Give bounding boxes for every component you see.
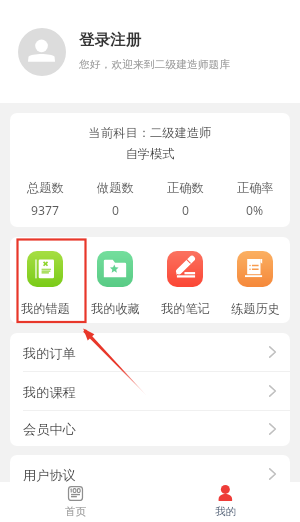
button[interactable]: 我的课程: [10, 372, 290, 410]
staticText: 我的: [215, 505, 236, 518]
staticText: 正确率: [237, 180, 274, 195]
staticText: 我的课程: [23, 384, 76, 401]
staticText: 您好，欢迎来到二级建造师题库: [79, 58, 231, 72]
button[interactable]: 我的: [150, 482, 300, 522]
staticText: 总题数: [27, 180, 64, 195]
staticText: 当前科目：二级建造师: [10, 125, 290, 140]
staticText: 0: [182, 202, 189, 219]
other: 首页: [68, 486, 83, 501]
staticText: 首页: [65, 505, 86, 518]
staticText: 练题历史: [231, 301, 280, 316]
button[interactable]: 我的收藏: [80, 237, 150, 316]
button[interactable]: 练题历史: [220, 237, 290, 316]
button[interactable]: 会员中心: [10, 411, 290, 446]
staticText: 做题数: [97, 180, 134, 195]
button[interactable]: 首页: [0, 482, 150, 522]
button[interactable]: 我的错题: [10, 237, 80, 316]
staticText: 正确数: [167, 180, 204, 195]
staticText: 登录注册: [79, 30, 141, 50]
staticText: 0%: [246, 202, 264, 219]
staticText: 我的订单: [23, 345, 76, 362]
staticText: 我的错题: [21, 301, 70, 316]
staticText: 自学模式: [10, 146, 290, 161]
staticText: 我的收藏: [91, 301, 140, 316]
button[interactable]: 用户协议: [10, 455, 290, 493]
button[interactable]: 我的笔记: [150, 237, 220, 316]
staticText: 会员中心: [23, 421, 76, 438]
other: 我的: [218, 486, 233, 501]
staticText: 用户协议: [23, 467, 76, 484]
staticText: 0: [112, 202, 119, 219]
button[interactable]: 我的订单: [10, 333, 290, 371]
staticText: 我的笔记: [161, 301, 210, 316]
staticText: 9377: [31, 202, 59, 219]
